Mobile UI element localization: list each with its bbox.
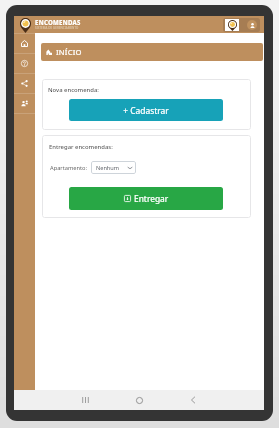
button[interactable]: Recents	[75, 390, 95, 410]
button[interactable]: Back	[183, 390, 203, 410]
staticText: Nova encomenda:	[48, 86, 99, 94]
staticText: Entregar encomendas:	[49, 143, 113, 151]
button[interactable]: INÍCIO	[41, 43, 263, 61]
staticText: ENCOMENDAS	[35, 18, 81, 26]
button[interactable]: Entregar	[69, 187, 223, 210]
staticText: Nenhum	[96, 164, 120, 172]
staticText: Entregar	[134, 193, 169, 204]
staticText: Apartamento:	[50, 164, 87, 172]
staticText: SISTEMA DE GERENCIAMENTO	[35, 26, 79, 30]
button[interactable]: Account	[247, 20, 257, 30]
staticText: INÍCIO	[56, 47, 82, 57]
button[interactable]: Add user	[14, 93, 35, 113]
button[interactable]: + Cadastrar	[69, 99, 223, 121]
staticText: + Cadastrar	[123, 105, 169, 116]
button[interactable]: Home	[14, 33, 35, 53]
button[interactable]: Nenhum	[91, 161, 136, 174]
button[interactable]: Brand	[225, 19, 239, 31]
button[interactable]: Home	[129, 390, 149, 410]
button[interactable]: Share	[14, 73, 35, 93]
button[interactable]: Help	[14, 53, 35, 73]
